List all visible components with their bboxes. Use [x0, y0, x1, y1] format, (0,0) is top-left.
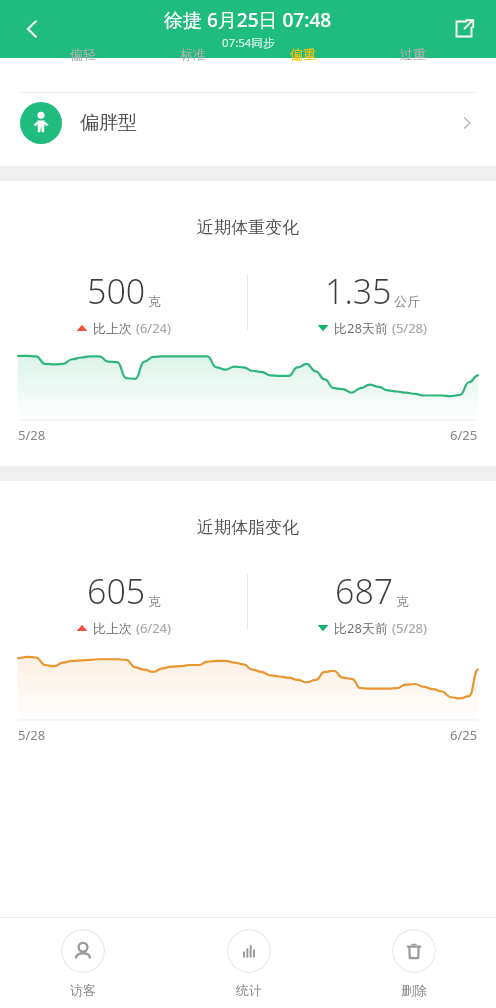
- staticText: 偏胖型: [80, 111, 137, 135]
- staticText: 徐捷 6月25日 07:48: [164, 7, 332, 33]
- staticText: 比上次: [93, 619, 136, 636]
- staticText: 标准: [180, 46, 206, 62]
- staticText: 删除: [401, 982, 427, 998]
- staticText: 比28天前: [334, 619, 392, 636]
- staticText: 克: [148, 293, 161, 309]
- staticText: 6/25: [450, 726, 478, 744]
- button[interactable]: 偏胖型: [0, 93, 496, 153]
- staticText: 6/25: [450, 426, 478, 444]
- staticText: 比上次: [93, 319, 136, 336]
- staticText: 1.35: [325, 268, 392, 314]
- staticText: (6/24): [136, 319, 171, 336]
- staticText: 克: [148, 593, 161, 609]
- staticText: 偏轻: [70, 46, 96, 62]
- staticText: 5/28: [18, 726, 46, 744]
- staticText: 克: [396, 593, 409, 609]
- staticText: 公斤: [394, 293, 420, 309]
- staticText: (5/28): [392, 319, 427, 336]
- staticText: 偏重: [290, 46, 316, 62]
- button[interactable]: Back: [8, 5, 56, 53]
- staticText: 近期体脂变化: [0, 517, 496, 538]
- staticText: 07:54同步: [222, 35, 275, 51]
- staticText: (6/24): [136, 619, 171, 636]
- staticText: (5/28): [392, 619, 427, 636]
- button[interactable]: 统计: [166, 923, 331, 1004]
- button[interactable]: 删除: [331, 923, 496, 1004]
- button[interactable]: Share: [440, 5, 488, 53]
- staticText: 近期体重变化: [0, 217, 496, 238]
- staticText: 统计: [236, 982, 262, 998]
- staticText: 500: [87, 268, 146, 314]
- staticText: 687: [335, 568, 394, 614]
- button[interactable]: 访客: [0, 923, 166, 1004]
- staticText: 过重: [400, 46, 426, 62]
- staticText: 比28天前: [334, 319, 392, 336]
- staticText: 5/28: [18, 426, 46, 444]
- staticText: 访客: [70, 982, 96, 998]
- staticText: 605: [87, 568, 146, 614]
